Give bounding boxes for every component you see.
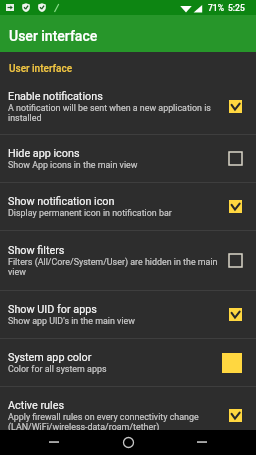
button[interactable]: Unchecked: [229, 152, 242, 165]
staticText: Display permanent icon in notification b…: [8, 208, 172, 218]
button[interactable]: Show filters: [0, 231, 256, 290]
button[interactable]: Enable notifications: [0, 78, 256, 134]
button[interactable]: Active rules: [0, 387, 256, 443]
staticText: Show UID for apps: [8, 303, 97, 316]
button[interactable]: System app color: [0, 339, 256, 386]
button[interactable]: Hide app icons: [0, 135, 256, 182]
button[interactable]: Checked: [229, 100, 242, 113]
staticText: 71%: [208, 3, 224, 13]
button[interactable]: Checked: [229, 308, 242, 321]
staticText: Show filters: [8, 244, 65, 257]
staticText: Color for all system apps: [8, 364, 107, 374]
staticText: Show notification icon: [8, 195, 115, 208]
staticText: 5:25: [228, 3, 245, 13]
button[interactable]: Recents: [182, 430, 222, 455]
staticText: User interface: [9, 28, 98, 44]
staticText: Show app UID's in the main view: [8, 316, 135, 326]
staticText: Filters (All/Core/System/User) are hidde…: [8, 257, 223, 277]
staticText: Active rules: [8, 399, 64, 412]
staticText: Hide app icons: [8, 147, 80, 160]
staticText: System app color: [8, 351, 92, 364]
staticText: Show App icons in the main view: [8, 160, 138, 170]
button[interactable]: Unchecked: [229, 254, 242, 267]
button[interactable]: Back: [34, 430, 74, 455]
staticText: User interface: [9, 63, 73, 75]
button[interactable]: Show UID for apps: [0, 291, 256, 338]
button[interactable]: User interface: [0, 15, 256, 52]
button[interactable]: Checked: [229, 409, 242, 422]
button[interactable]: Show notification icon: [0, 183, 256, 230]
staticText: A notification will be sent when a new a…: [8, 103, 223, 123]
staticText: Enable notifications: [8, 90, 103, 103]
staticText: Apply firewall rules on every connectivi…: [8, 412, 223, 432]
button[interactable]: Home: [108, 430, 148, 455]
button[interactable]: Checked: [229, 200, 242, 213]
